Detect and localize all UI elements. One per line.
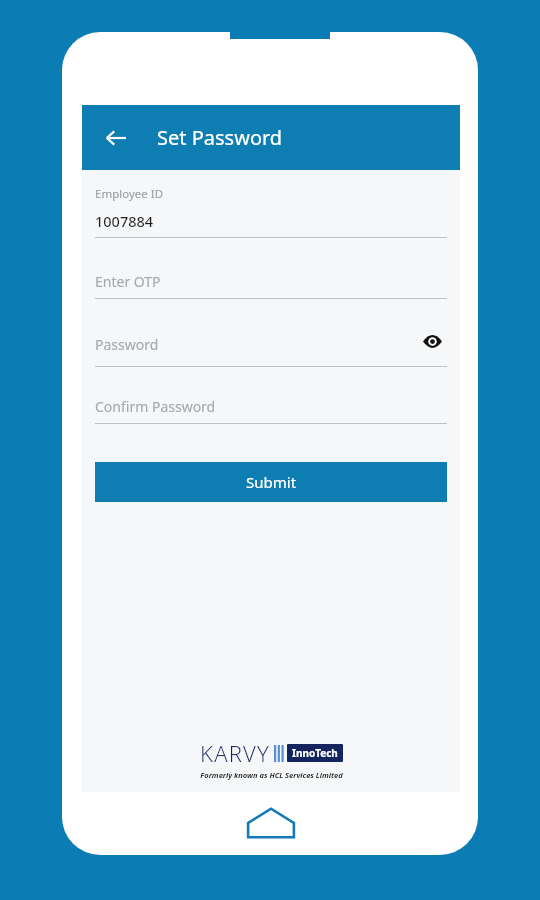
staticText: Employee ID xyxy=(95,186,164,202)
staticText: Formerly known as HCL Services Limited xyxy=(200,770,343,780)
staticText: Set Password xyxy=(157,124,283,151)
staticText: Password xyxy=(95,335,159,354)
staticText: Confirm Password xyxy=(95,397,216,416)
staticText: 1007884 xyxy=(95,211,154,231)
staticText: Enter OTP xyxy=(95,272,161,291)
button[interactable]: Home xyxy=(238,802,304,844)
button[interactable]: Show password xyxy=(417,326,447,356)
staticText: Submit xyxy=(246,472,297,492)
button[interactable]: Enter OTP xyxy=(95,272,447,299)
button[interactable]: Submit xyxy=(95,462,447,502)
button[interactable]: Employee ID xyxy=(95,186,447,238)
button[interactable]: Confirm Password xyxy=(95,397,447,424)
button[interactable]: Back xyxy=(92,114,140,162)
button[interactable]: Password xyxy=(95,329,447,367)
staticText: InnoTech xyxy=(292,746,338,760)
staticText: KARVY xyxy=(200,738,271,768)
